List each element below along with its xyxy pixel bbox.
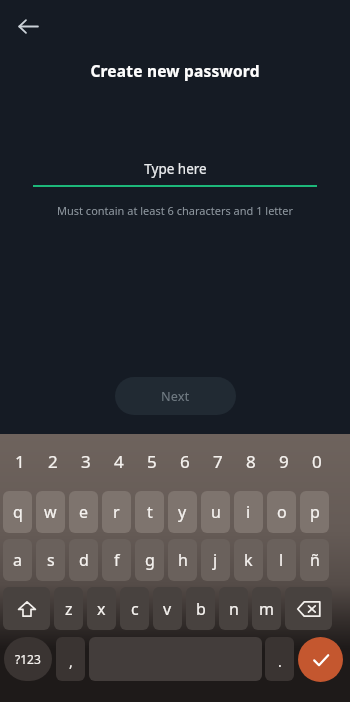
button[interactable]: t — [135, 491, 164, 533]
button[interactable]: p — [300, 491, 329, 533]
staticText: d — [79, 549, 89, 571]
staticText: g — [145, 549, 155, 571]
button[interactable]: Shift — [3, 587, 50, 630]
staticText: Must contain at least 6 characters and 1… — [0, 203, 350, 218]
button[interactable]: 4 — [102, 434, 135, 488]
button[interactable]: f — [102, 539, 131, 581]
button[interactable]: Back — [10, 8, 46, 44]
button[interactable]: Enter — [298, 637, 343, 682]
button[interactable]: c — [120, 587, 149, 630]
staticText: z — [65, 598, 73, 620]
button[interactable]: Type here — [33, 160, 317, 178]
button[interactable]: u — [201, 491, 230, 533]
staticText: h — [178, 549, 188, 571]
staticText: x — [97, 598, 106, 620]
button[interactable]: r — [102, 491, 131, 533]
staticText: t — [147, 501, 153, 523]
button[interactable]: o — [267, 491, 296, 533]
button[interactable]: l — [267, 539, 296, 581]
staticText: k — [244, 549, 253, 571]
button[interactable]: e — [69, 491, 98, 533]
staticText: n — [229, 598, 239, 620]
staticText: 3 — [81, 450, 91, 473]
staticText: ?123 — [15, 651, 41, 667]
staticText: o — [277, 501, 287, 523]
button[interactable]: v — [153, 587, 182, 630]
staticText: 8 — [246, 450, 256, 473]
button[interactable]: k — [234, 539, 263, 581]
staticText: , — [69, 652, 73, 671]
staticText: l — [279, 549, 284, 571]
staticText: e — [79, 501, 89, 523]
button[interactable]: j — [201, 539, 230, 581]
staticText: 0 — [312, 450, 322, 473]
staticText: Next — [161, 388, 190, 405]
button[interactable]: 7 — [201, 434, 234, 488]
staticText: f — [114, 549, 120, 571]
button[interactable]: Next — [115, 377, 236, 415]
button[interactable]: 6 — [168, 434, 201, 488]
staticText: w — [44, 501, 57, 523]
button[interactable]: i — [234, 491, 263, 533]
staticText: 9 — [279, 450, 289, 473]
staticText: v — [163, 598, 172, 620]
button[interactable]: z — [54, 587, 83, 630]
staticText: Create new password — [0, 60, 350, 81]
staticText: 6 — [180, 450, 190, 473]
button[interactable]: , — [56, 637, 85, 681]
button[interactable]: 9 — [267, 434, 300, 488]
button[interactable]: s — [36, 539, 65, 581]
staticText: 7 — [213, 450, 223, 473]
button[interactable]: 1 — [3, 434, 36, 488]
staticText: p — [310, 501, 320, 523]
button[interactable]: ñ — [300, 539, 329, 581]
button[interactable]: h — [168, 539, 197, 581]
staticText: 5 — [147, 450, 157, 473]
button[interactable]: 5 — [135, 434, 168, 488]
staticText: q — [13, 501, 23, 523]
button[interactable]: ?123 — [4, 637, 52, 681]
staticText: 2 — [48, 450, 58, 473]
staticText: . — [278, 652, 282, 671]
button[interactable]: b — [186, 587, 215, 630]
staticText: j — [213, 549, 218, 571]
staticText: c — [131, 598, 139, 620]
staticText: 4 — [114, 450, 124, 473]
staticText: 1 — [15, 450, 25, 473]
button[interactable]: m — [252, 587, 281, 630]
staticText: Type here — [144, 160, 207, 178]
staticText: i — [246, 501, 251, 523]
button[interactable]: 0 — [300, 434, 333, 488]
staticText: r — [113, 501, 120, 523]
staticText: s — [47, 549, 55, 571]
button[interactable]: y — [168, 491, 197, 533]
button[interactable]: . — [265, 637, 294, 681]
button[interactable]: d — [69, 539, 98, 581]
staticText: m — [259, 598, 274, 620]
button[interactable]: 2 — [36, 434, 69, 488]
staticText: a — [13, 549, 22, 571]
button[interactable]: 8 — [234, 434, 267, 488]
staticText: ñ — [310, 549, 320, 571]
button[interactable]: w — [36, 491, 65, 533]
button[interactable]: x — [87, 587, 116, 630]
staticText: u — [211, 501, 221, 523]
staticText: b — [196, 598, 206, 620]
button[interactable]: n — [219, 587, 248, 630]
staticText: y — [178, 501, 187, 523]
button[interactable]: g — [135, 539, 164, 581]
button[interactable]: q — [3, 491, 32, 533]
button[interactable]: Backspace — [285, 587, 332, 630]
button[interactable]: 3 — [69, 434, 102, 488]
button[interactable]: a — [3, 539, 32, 581]
